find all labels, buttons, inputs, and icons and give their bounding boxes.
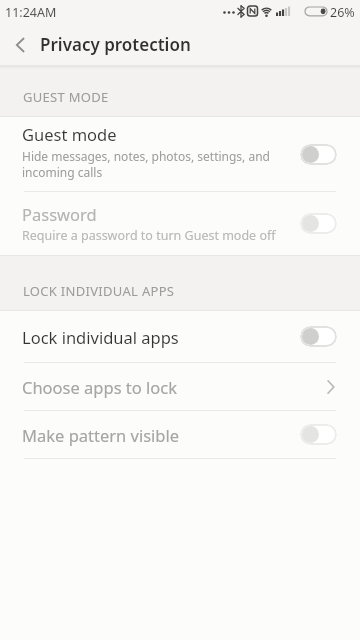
button[interactable]: Privacy protection <box>0 24 360 65</box>
button[interactable]: Guest mode <box>0 117 360 191</box>
button[interactable] <box>300 326 337 347</box>
button[interactable]: Lock individual apps <box>0 311 360 362</box>
staticText: Password <box>22 203 97 225</box>
staticText: 11:24AM <box>5 4 57 21</box>
button[interactable]: Choose apps to lock <box>0 363 360 410</box>
button[interactable] <box>300 144 337 165</box>
staticText: Privacy protection <box>40 33 191 56</box>
staticText: Lock individual apps <box>22 326 300 348</box>
button[interactable]: Make pattern visible <box>0 411 360 458</box>
staticText: Hide messages, notes, photos, settings, … <box>22 148 270 180</box>
staticText: LOCK INDIVIDUAL APPS <box>23 282 175 300</box>
staticText: Require a password to turn Guest mode of… <box>22 227 276 244</box>
staticText: 26% <box>330 4 355 21</box>
staticText: Guest mode <box>22 123 117 145</box>
staticText: GUEST MODE <box>23 88 109 106</box>
staticText: Make pattern visible <box>22 424 300 446</box>
button[interactable] <box>300 424 337 445</box>
staticText: Choose apps to lock <box>22 376 327 398</box>
button[interactable]: Password <box>0 192 360 255</box>
button[interactable] <box>300 213 337 234</box>
